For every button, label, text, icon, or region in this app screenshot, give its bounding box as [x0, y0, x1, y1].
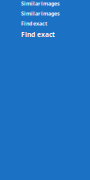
staticText: Find exact: [21, 30, 55, 39]
staticText: Find exact: [21, 20, 47, 27]
staticText: Similar images: [21, 0, 60, 7]
staticText: Similar images: [21, 10, 60, 17]
